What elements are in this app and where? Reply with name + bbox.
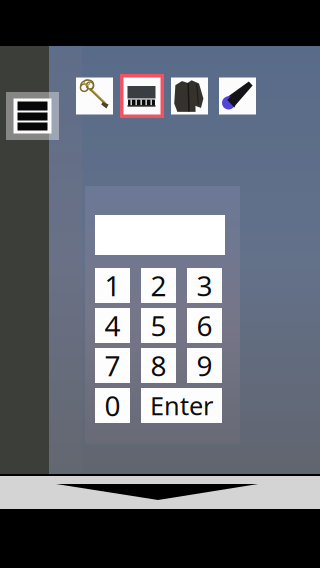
button[interactable]: 3 xyxy=(187,268,222,303)
staticText: 9 xyxy=(196,347,212,384)
staticText: 2 xyxy=(150,267,166,304)
button[interactable]: 9 xyxy=(187,348,222,383)
button[interactable]: 5 xyxy=(141,308,176,343)
button[interactable]: 0 xyxy=(95,388,130,423)
button[interactable]: 6 xyxy=(187,308,222,343)
button[interactable]: Back xyxy=(0,476,320,509)
button[interactable]: 1 xyxy=(95,268,130,303)
button[interactable]: Key xyxy=(76,77,113,114)
staticText: Enter xyxy=(150,389,213,422)
staticText: 5 xyxy=(150,307,166,344)
staticText: 1 xyxy=(104,267,120,304)
button[interactable]: Enter xyxy=(141,388,222,423)
staticText: 8 xyxy=(150,347,166,384)
staticText: 0 xyxy=(104,387,120,424)
button[interactable]: Card reader xyxy=(120,74,164,118)
button[interactable]: 7 xyxy=(95,348,130,383)
staticText: 4 xyxy=(104,307,120,344)
button[interactable]: Jacket xyxy=(171,77,208,114)
button[interactable]: 8 xyxy=(141,348,176,383)
staticText: 7 xyxy=(104,347,120,384)
staticText: 6 xyxy=(196,307,212,344)
button[interactable]: Menu xyxy=(6,92,59,140)
button[interactable]: 4 xyxy=(95,308,130,343)
button[interactable]: 2 xyxy=(141,268,176,303)
staticText: 3 xyxy=(196,267,212,304)
button[interactable]: UV flashlight xyxy=(219,77,256,114)
